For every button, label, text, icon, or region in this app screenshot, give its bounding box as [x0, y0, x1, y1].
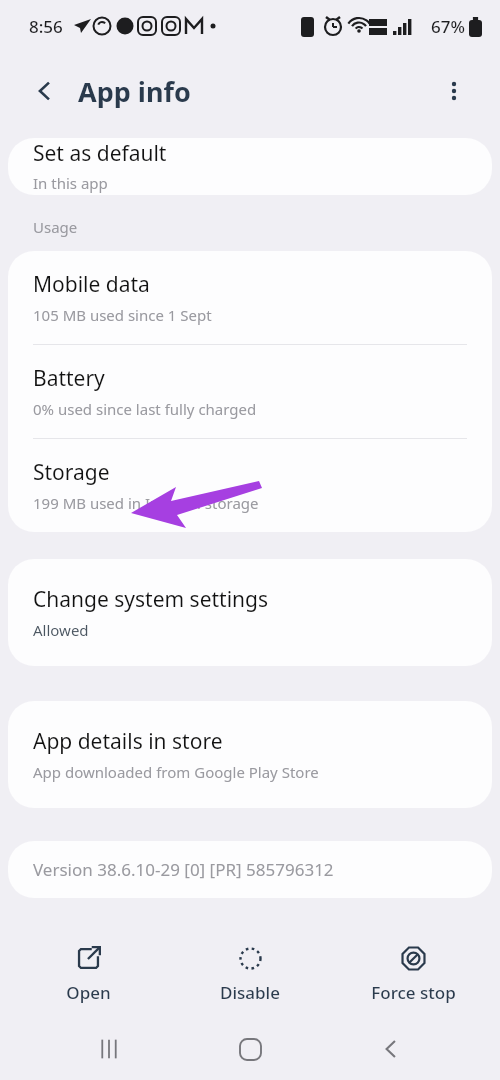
staticText: Set as default — [33, 139, 167, 168]
staticText: App info — [78, 73, 191, 110]
button[interactable]: App details in store — [8, 701, 492, 808]
staticText: Mobile data — [33, 270, 150, 299]
staticText: Disable — [220, 981, 280, 1004]
staticText: Allowed — [33, 620, 89, 640]
staticText: Storage — [33, 458, 110, 487]
button[interactable]: Change system settings — [8, 559, 492, 666]
staticText: 0% used since last fully charged — [33, 399, 257, 419]
staticText: Force stop — [371, 981, 456, 1004]
staticText: 67% — [431, 15, 465, 38]
staticText: 199 MB used in Internal storage — [33, 493, 259, 513]
button[interactable]: Recent apps — [77, 1018, 141, 1080]
button[interactable]: Battery — [8, 345, 492, 438]
staticText: 105 MB used since 1 Sept — [33, 305, 212, 325]
staticText: Version 38.6.10-29 [0] [PR] 585796312 — [33, 858, 334, 881]
staticText: App downloaded from Google Play Store — [33, 762, 319, 782]
staticText: Usage — [33, 217, 78, 237]
button[interactable]: Storage — [8, 439, 492, 532]
button[interactable]: More options — [432, 69, 476, 113]
button[interactable]: Back — [359, 1018, 423, 1080]
staticText: In this app — [33, 173, 108, 193]
button[interactable]: Version 38.6.10-29 [0] [PR] 585796312 — [8, 841, 492, 898]
staticText: Battery — [33, 364, 105, 393]
staticText: 8:56 — [29, 15, 63, 38]
button[interactable]: Force stop — [338, 939, 488, 1010]
staticText: Open — [66, 981, 111, 1004]
staticText: App details in store — [33, 727, 223, 756]
button[interactable]: Home — [218, 1018, 282, 1080]
staticText: Change system settings — [33, 585, 269, 614]
button[interactable]: Set as default — [8, 138, 492, 195]
button[interactable]: Back — [22, 68, 68, 114]
button[interactable]: Mobile data — [8, 251, 492, 344]
button[interactable]: Disable — [175, 939, 325, 1010]
button[interactable]: Open — [13, 939, 163, 1010]
